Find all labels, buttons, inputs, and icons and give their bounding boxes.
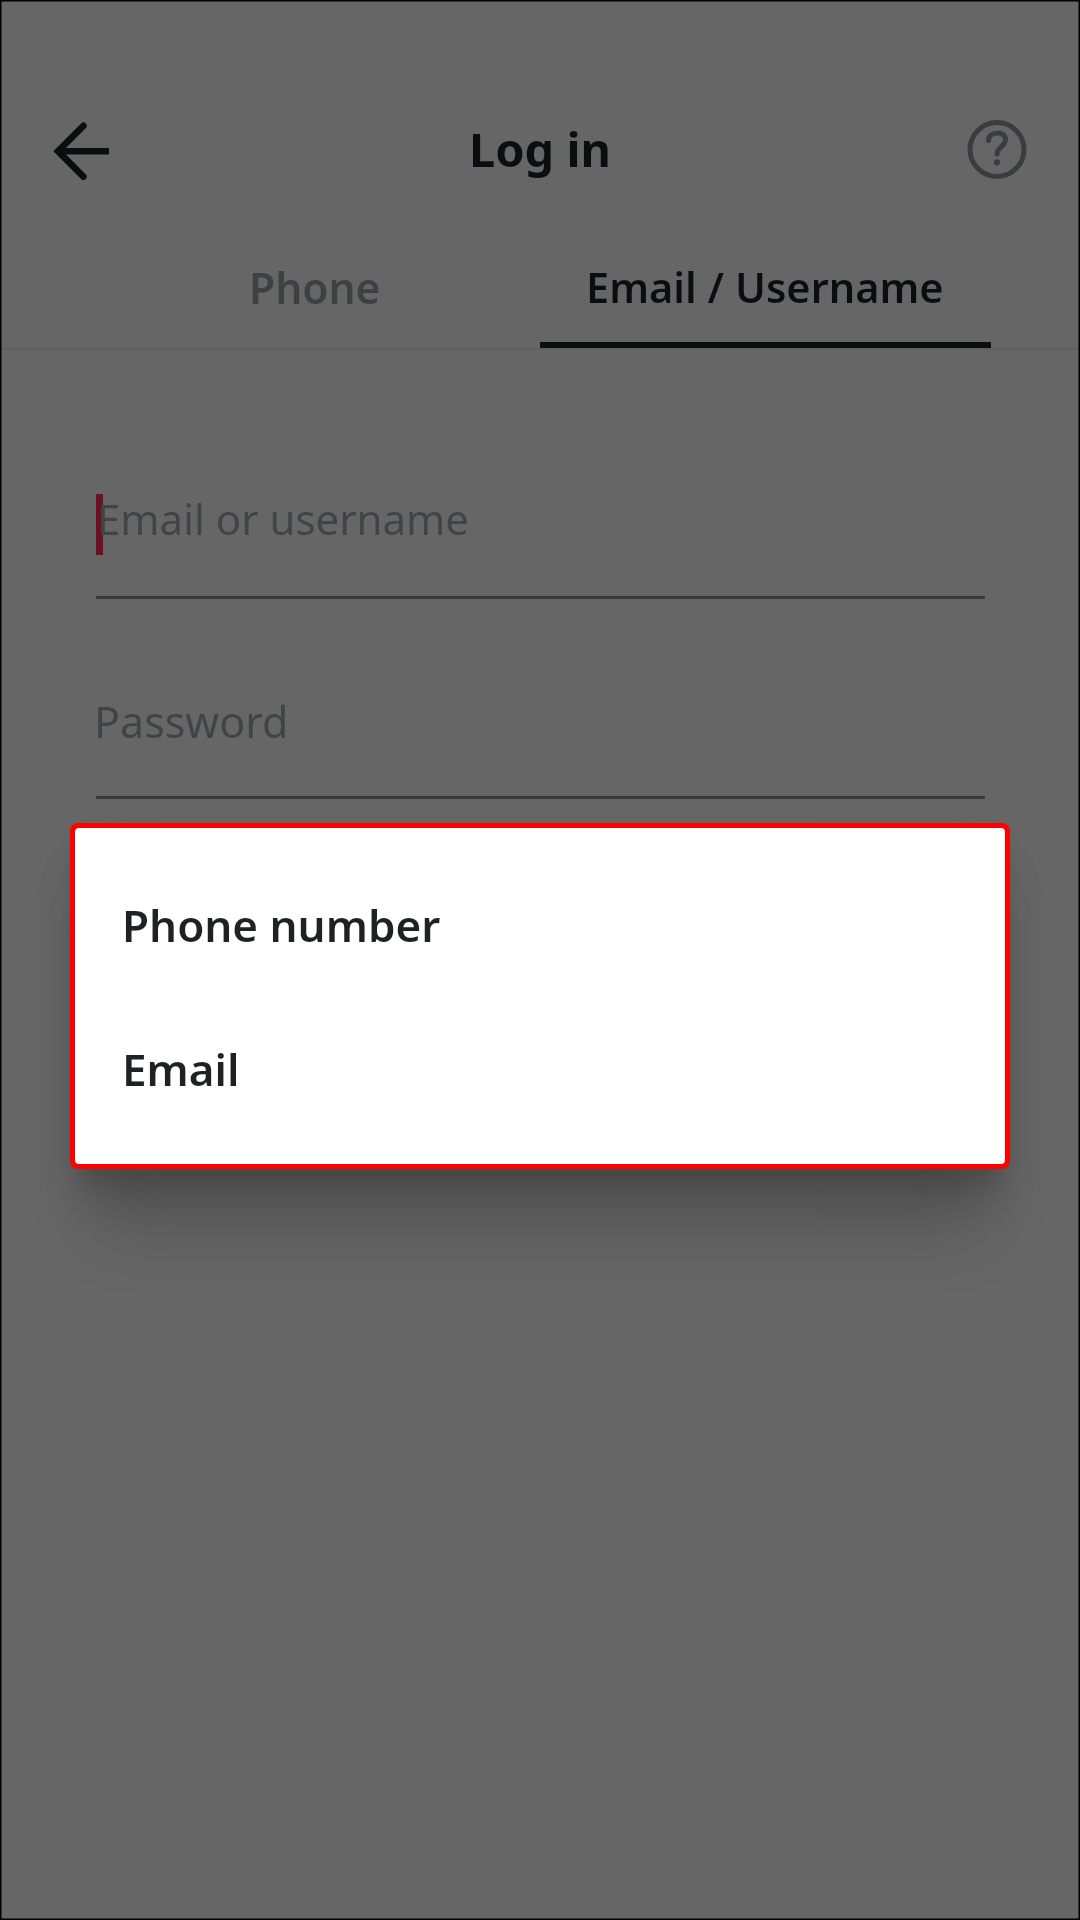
button[interactable]: Back (24, 121, 86, 183)
button[interactable]: Email (75, 972, 1005, 1162)
staticText: Email / Username (586, 259, 944, 316)
button[interactable]: Phone number (75, 828, 1005, 972)
button[interactable]: Phone (90, 234, 540, 342)
button[interactable]: Email / Username (540, 234, 990, 342)
staticText: Email or username (97, 490, 470, 547)
staticText: Password (94, 692, 289, 751)
staticText: Log in (0, 117, 1080, 181)
button[interactable]: Help (951, 104, 1043, 196)
staticText: Email (122, 1039, 240, 1099)
staticText: Phone number (122, 895, 441, 955)
staticText: Phone (249, 259, 381, 317)
